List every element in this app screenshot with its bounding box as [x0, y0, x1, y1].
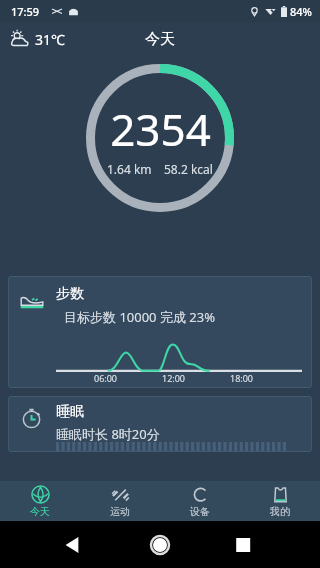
staticText: 18:00 — [230, 372, 254, 384]
button[interactable]: 步数 — [8, 276, 312, 388]
staticText: 睡眠 — [56, 403, 84, 421]
staticText: 设备 — [190, 505, 210, 518]
staticText: 运动 — [110, 505, 130, 518]
staticText: 睡眠时长 8时20分 — [56, 425, 160, 443]
button[interactable]: 运动 — [80, 481, 160, 521]
staticText: 58.2 kcal — [164, 161, 213, 177]
button[interactable]: 设备 — [160, 481, 240, 521]
staticText: 步数 — [56, 285, 84, 303]
button[interactable]: 我的 — [240, 481, 320, 521]
staticText: 今天 — [30, 505, 50, 518]
staticText: 84% — [290, 4, 312, 19]
button[interactable]: 睡眠 — [8, 396, 312, 452]
button[interactable]: 今天 — [0, 481, 80, 521]
staticText: 目标步数 10000 完成 23% — [64, 308, 215, 326]
staticText: 我的 — [270, 505, 290, 518]
staticText: 2354 — [110, 99, 211, 159]
staticText: 12:00 — [162, 372, 186, 384]
staticText: 1.64 km — [107, 161, 152, 177]
staticText: 17:59 — [11, 4, 40, 19]
staticText: 31℃ — [35, 30, 65, 49]
staticText: 今天 — [145, 30, 175, 49]
staticText: 06:00 — [94, 372, 118, 384]
